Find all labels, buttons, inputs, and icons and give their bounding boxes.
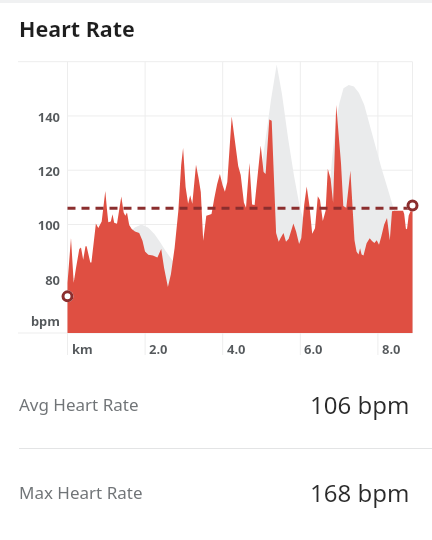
staticText: 80 xyxy=(18,271,60,289)
staticText: 8.0 xyxy=(382,340,401,358)
staticText: km xyxy=(72,340,93,358)
staticText: bpm xyxy=(18,312,60,330)
staticText: 2.0 xyxy=(149,340,168,358)
staticText: 140 xyxy=(18,108,60,126)
staticText: 106 bpm xyxy=(310,388,410,421)
button[interactable]: Avg Heart Rate xyxy=(0,366,432,442)
staticText: Avg Heart Rate xyxy=(19,393,139,416)
staticText: 4.0 xyxy=(227,340,246,358)
staticText: Heart Rate xyxy=(19,14,135,43)
staticText: 168 bpm xyxy=(310,476,410,509)
staticText: 6.0 xyxy=(304,340,323,358)
staticText: 120 xyxy=(18,162,60,180)
staticText: Max Heart Rate xyxy=(19,481,143,504)
button[interactable]: Max Heart Rate xyxy=(0,454,432,530)
staticText: 100 xyxy=(18,216,60,234)
